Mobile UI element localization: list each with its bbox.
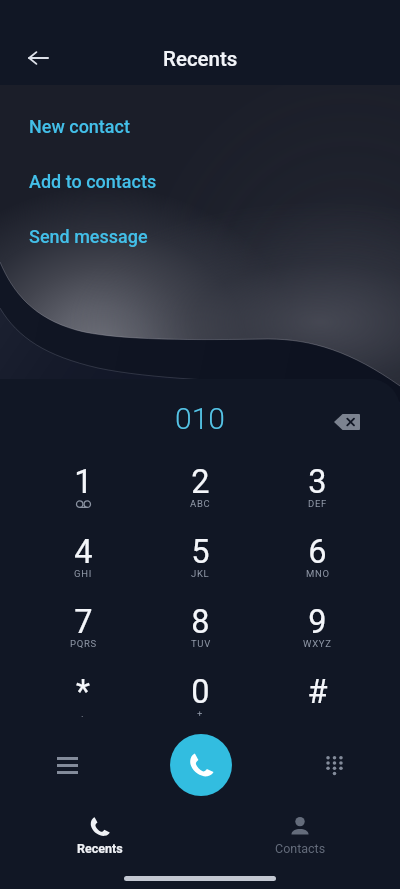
staticText: 6 — [308, 533, 327, 571]
staticText: 0 — [191, 673, 210, 711]
button[interactable]: New contact — [0, 99, 400, 154]
button[interactable]: 9 — [259, 591, 376, 661]
button[interactable]: 8 — [142, 591, 259, 661]
staticText: . — [81, 708, 85, 719]
button[interactable]: # — [259, 661, 376, 731]
staticText: DEF — [308, 498, 327, 509]
staticText: 5 — [191, 533, 210, 571]
staticText: * — [76, 673, 90, 711]
staticText: WXYZ — [303, 638, 332, 649]
staticText: Add to contacts — [29, 171, 157, 192]
staticText: PQRS — [70, 638, 97, 649]
button[interactable]: Add to contacts — [0, 154, 400, 209]
staticText: TUV — [191, 638, 211, 649]
staticText: Send message — [29, 226, 148, 247]
button[interactable]: * — [24, 661, 142, 731]
staticText: 7 — [74, 603, 93, 641]
button[interactable]: Dialpad — [311, 742, 357, 788]
staticText: 8 — [191, 603, 210, 641]
button[interactable]: 7 — [24, 591, 142, 661]
button[interactable]: Recents — [0, 800, 200, 860]
button[interactable]: 1 — [24, 451, 142, 521]
button[interactable]: 6 — [259, 521, 376, 591]
button[interactable]: 3 — [259, 451, 376, 521]
staticText: # — [307, 673, 328, 711]
button[interactable]: Back — [18, 38, 58, 78]
staticText: 010 — [175, 401, 225, 436]
staticText: 3 — [308, 463, 327, 501]
staticText: 1 — [74, 463, 93, 501]
button[interactable]: Backspace — [327, 402, 367, 442]
button[interactable]: 4 — [24, 521, 142, 591]
button[interactable]: 0 — [142, 661, 259, 731]
staticText: Recents — [77, 841, 123, 856]
staticText: JKL — [191, 568, 210, 579]
staticText: 4 — [74, 533, 93, 571]
staticText: 9 — [308, 603, 327, 641]
staticText: MNO — [306, 568, 330, 579]
staticText: + — [197, 708, 204, 719]
staticText: ABC — [190, 498, 211, 509]
staticText: New contact — [29, 116, 130, 137]
staticText: 2 — [191, 463, 210, 501]
button[interactable]: Contacts — [200, 800, 400, 860]
button[interactable]: Send message — [0, 209, 400, 264]
button[interactable]: 2 — [142, 451, 259, 521]
staticText: GHI — [74, 568, 92, 579]
button[interactable]: Call — [170, 734, 232, 796]
button[interactable]: Call log — [44, 742, 90, 788]
button[interactable]: 5 — [142, 521, 259, 591]
staticText: Contacts — [275, 841, 326, 856]
staticText: Recents — [163, 47, 238, 71]
